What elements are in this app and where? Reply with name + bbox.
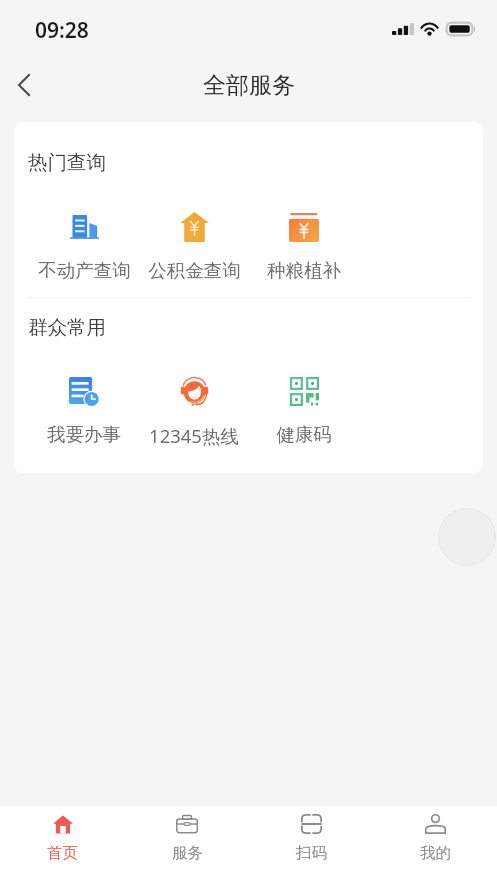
- staticText: 健康码: [276, 423, 332, 446]
- button[interactable]: 公积金查询: [139, 211, 249, 282]
- staticText: 服务: [172, 843, 203, 863]
- button[interactable]: 扫码: [249, 806, 373, 883]
- button[interactable]: 首页: [0, 806, 125, 883]
- button[interactable]: Back: [2, 63, 47, 108]
- staticText: 09:28: [35, 16, 89, 45]
- button[interactable]: 种粮植补: [249, 211, 359, 282]
- button[interactable]: 12345热线: [139, 375, 249, 448]
- staticText: 不动产查询: [38, 259, 131, 282]
- staticText: 12345热线: [149, 423, 239, 448]
- button[interactable]: 服务: [125, 806, 249, 883]
- staticText: 首页: [47, 843, 78, 863]
- staticText: 公积金查询: [148, 259, 241, 282]
- staticText: 我的: [420, 843, 451, 863]
- staticText: 全部服务: [203, 71, 295, 100]
- button[interactable]: 我的: [373, 806, 497, 883]
- staticText: 种粮植补: [267, 259, 341, 282]
- staticText: 我要办事: [47, 423, 121, 446]
- staticText: 群众常用: [28, 315, 106, 340]
- staticText: 扫码: [296, 843, 327, 863]
- button[interactable]: 不动产查询: [29, 211, 139, 282]
- staticText: 热门查询: [28, 150, 106, 175]
- button[interactable]: 健康码: [249, 375, 359, 446]
- button[interactable]: 我要办事: [29, 375, 139, 446]
